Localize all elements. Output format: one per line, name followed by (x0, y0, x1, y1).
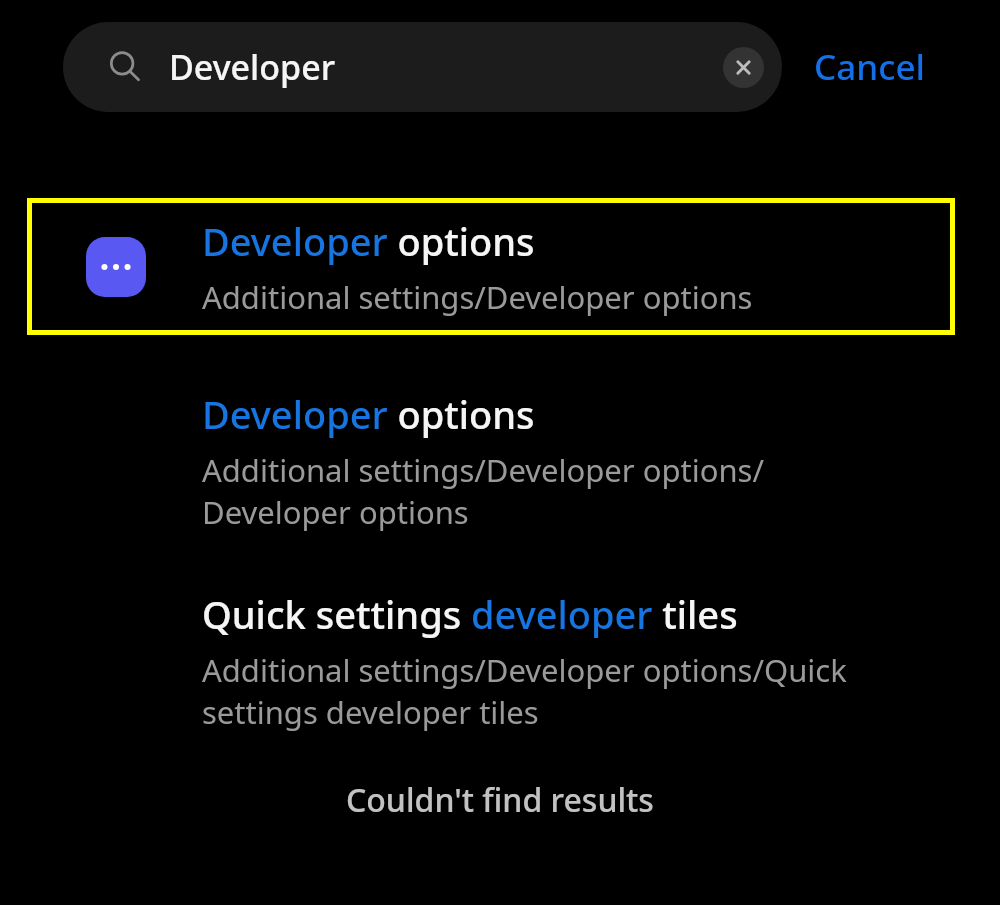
staticText: Couldn't find results (346, 778, 654, 822)
staticText: Additional settings/Developer options (202, 276, 753, 318)
staticText: Developer (169, 44, 336, 90)
button[interactable]: Developer (63, 22, 782, 112)
button[interactable]: Developer options (0, 378, 1000, 543)
staticText: Additional settings/Developer options/ D… (202, 449, 764, 533)
staticText: Developer options (202, 388, 535, 440)
staticText: Quick settings developer tiles (202, 588, 738, 640)
staticText: Additional settings/Developer options/Qu… (202, 649, 847, 733)
staticText: Cancel (814, 43, 925, 91)
button[interactable]: Developer options (27, 198, 955, 335)
button[interactable]: Quick settings developer tiles (0, 578, 1000, 743)
button[interactable]: Clear search (723, 47, 764, 88)
button[interactable]: Cancel (806, 33, 933, 101)
staticText: Developer options (202, 215, 535, 267)
